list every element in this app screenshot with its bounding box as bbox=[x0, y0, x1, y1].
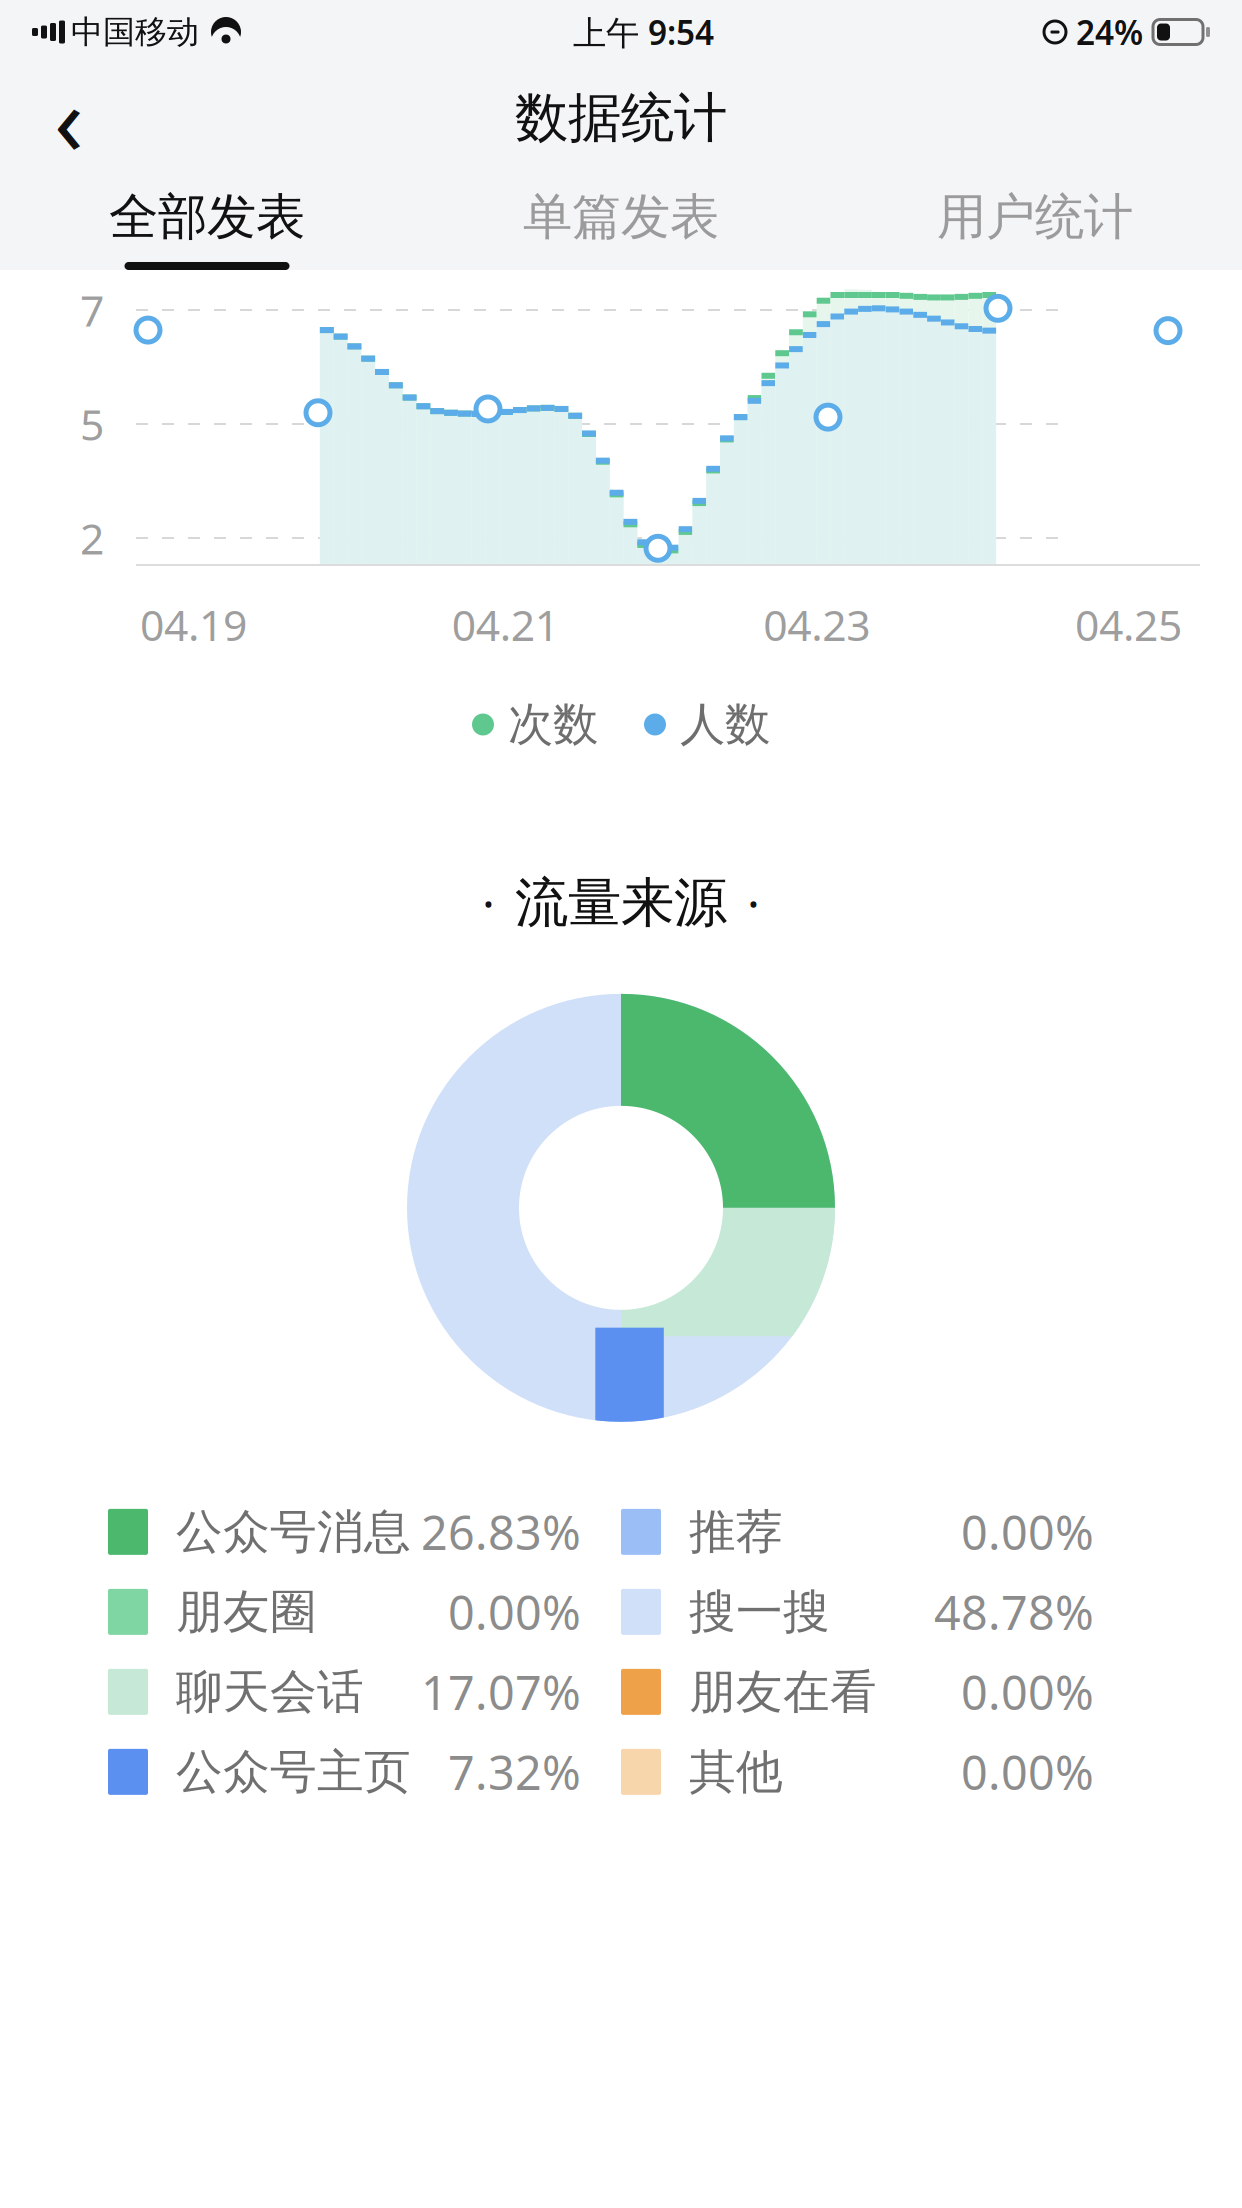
staticText: 04.19 bbox=[140, 596, 247, 653]
staticText: 0.00% bbox=[448, 1581, 581, 1643]
staticText: 26.83% bbox=[421, 1501, 581, 1563]
staticText: 朋友在看 bbox=[689, 1663, 877, 1720]
staticText: 单篇发表 bbox=[523, 187, 719, 247]
staticText: 7.32% bbox=[448, 1741, 581, 1803]
staticText: 搜一搜 bbox=[689, 1583, 830, 1640]
staticText: 5 bbox=[80, 396, 104, 452]
staticText: 用户统计 bbox=[937, 187, 1133, 247]
staticText: 上午 9:54 bbox=[573, 10, 714, 54]
staticText: 48.78% bbox=[934, 1581, 1094, 1643]
button[interactable]: 返回 bbox=[30, 79, 108, 157]
staticText: 流量来源 bbox=[515, 870, 727, 936]
staticText: 0.00% bbox=[961, 1501, 1094, 1563]
button[interactable]: 单篇发表 bbox=[414, 172, 828, 270]
staticText: · bbox=[482, 871, 495, 935]
staticText: 人数 bbox=[680, 697, 770, 752]
staticText: · bbox=[747, 871, 760, 935]
staticText: 其他 bbox=[689, 1743, 783, 1800]
staticText: 公众号主页 bbox=[176, 1743, 411, 1800]
staticText: 全部发表 bbox=[109, 187, 305, 247]
staticText: ‹ bbox=[54, 54, 84, 182]
staticText: 04.21 bbox=[452, 596, 559, 653]
staticText: 04.25 bbox=[1075, 596, 1182, 653]
staticText: 推荐 bbox=[689, 1503, 783, 1560]
staticText: 数据统计 bbox=[515, 85, 727, 151]
staticText: 2 bbox=[80, 510, 104, 566]
staticText: 聊天会话 bbox=[176, 1663, 364, 1720]
staticText: 04.23 bbox=[763, 596, 870, 653]
staticText: 7 bbox=[80, 282, 104, 338]
staticText: 24% bbox=[1076, 10, 1143, 54]
staticText: 17.07% bbox=[421, 1661, 581, 1723]
staticText: 公众号消息 bbox=[176, 1503, 411, 1560]
staticText: 次数 bbox=[508, 697, 598, 752]
staticText: 中国移动 bbox=[71, 12, 199, 52]
button[interactable]: 全部发表 bbox=[0, 172, 414, 270]
staticText: 朋友圈 bbox=[176, 1583, 317, 1640]
staticText: 0.00% bbox=[961, 1661, 1094, 1723]
button[interactable]: 用户统计 bbox=[828, 172, 1242, 270]
staticText: 0.00% bbox=[961, 1741, 1094, 1803]
